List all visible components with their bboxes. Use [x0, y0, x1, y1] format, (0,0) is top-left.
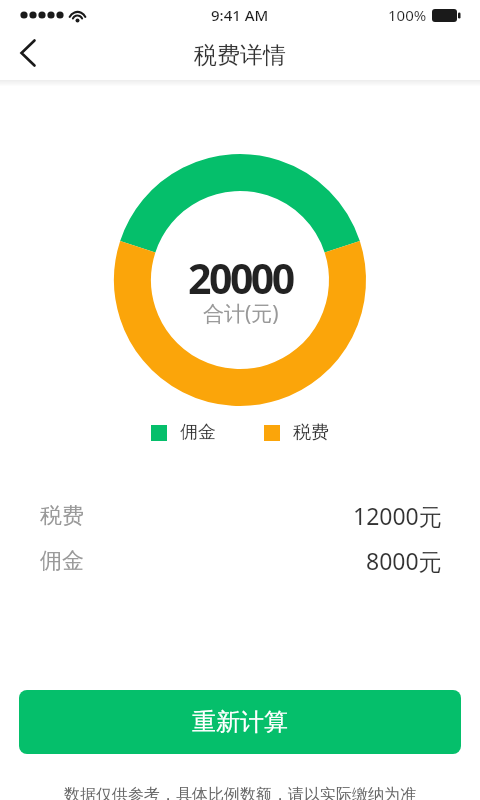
staticText: 佣金 [40, 547, 84, 575]
staticText: 12000元 [353, 500, 442, 531]
staticText: 税费详情 [194, 41, 286, 70]
button[interactable]: 税费 [40, 500, 442, 531]
staticText: 税费 [293, 421, 329, 444]
button[interactable] [8, 33, 48, 73]
staticText: 9:41 AM [211, 5, 269, 25]
staticText: 合计(元) [203, 299, 279, 328]
staticText: 佣金 [180, 421, 216, 444]
staticText: 数据仅供参考，具体比例数额，请以实际缴纳为准 [0, 785, 480, 800]
button[interactable]: 佣金 [40, 545, 442, 576]
staticText: 税费 [40, 502, 84, 530]
button[interactable]: 重新计算 [19, 690, 461, 754]
staticText: 8000元 [366, 545, 442, 576]
staticText: 重新计算 [192, 707, 288, 737]
staticText: 100% [388, 5, 427, 25]
staticText: 20000 [188, 250, 293, 306]
